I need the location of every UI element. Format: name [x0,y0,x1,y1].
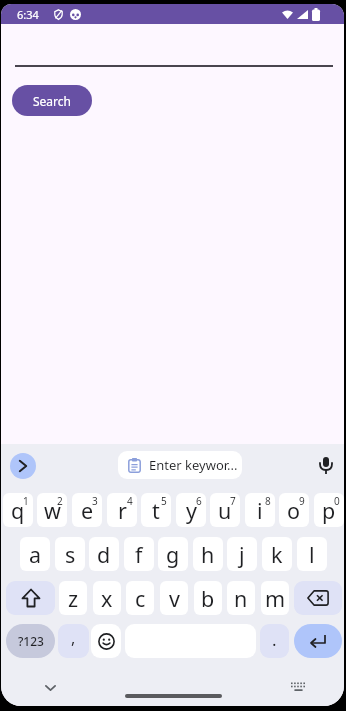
staticText: o [287,496,301,525]
button[interactable]: j [227,537,257,571]
button[interactable] [294,624,342,658]
staticText: r [118,496,127,525]
staticText: 5 [161,494,167,508]
staticText: 3 [92,494,98,508]
button[interactable]: x [93,581,121,615]
staticText: 6 [196,494,202,508]
button[interactable]: u [210,493,240,527]
staticText: 6:34 [17,7,39,22]
staticText: g [166,540,180,569]
button[interactable]: y [176,493,206,527]
staticText: l [309,540,315,569]
staticText: ?123 [18,633,44,649]
button[interactable]: l [297,537,327,571]
staticText: y [186,496,197,525]
button[interactable]: d [89,537,119,571]
button[interactable]: a [20,537,50,571]
staticText: d [97,540,111,569]
staticText: x [101,584,113,613]
button[interactable] [290,682,307,693]
staticText: z [68,584,79,613]
staticText: 1 [23,494,29,508]
button[interactable]: i [245,493,275,527]
staticText: 2 [57,494,63,508]
staticText: 8 [265,494,271,508]
staticText: k [271,540,283,569]
staticText: 7 [230,494,236,508]
staticText: 4 [127,494,133,508]
button[interactable]: c [126,581,154,615]
staticText: u [218,496,232,525]
staticText: n [234,584,248,613]
staticText: . [272,628,277,651]
staticText: h [201,540,215,569]
button[interactable]: h [193,537,223,571]
button[interactable]: r [107,493,137,527]
button[interactable]: s [55,537,85,571]
button[interactable]: m [261,581,289,615]
button[interactable]: n [227,581,255,615]
staticText: , [71,627,76,649]
button[interactable] [10,453,36,479]
button[interactable]: ?123 [6,624,55,658]
staticText: b [201,584,215,613]
staticText: q [11,496,25,525]
button[interactable]: t [141,493,171,527]
button[interactable]: . [260,624,289,658]
button[interactable] [6,581,55,615]
button[interactable]: o [279,493,309,527]
button[interactable] [125,694,222,698]
button[interactable]: v [160,581,188,615]
button[interactable]: w [37,493,67,527]
staticText: c [135,584,146,613]
staticText: j [239,540,245,569]
button[interactable]: f [124,537,154,571]
staticText: f [135,540,143,569]
staticText: v [169,584,180,613]
button[interactable] [294,581,342,615]
button[interactable] [91,624,121,658]
button[interactable]: Enter keywor... [118,451,242,479]
staticText: Search [33,93,71,109]
staticText: m [265,584,286,613]
button[interactable]: b [194,581,222,615]
staticText: t [152,496,160,525]
staticText: p [322,496,336,525]
button[interactable]: e [72,493,102,527]
button[interactable] [39,679,61,697]
button[interactable]: k [262,537,292,571]
staticText: a [29,540,42,569]
staticText: w [44,496,61,525]
staticText: Enter keywor... [149,456,238,474]
staticText: 9 [299,494,305,508]
button[interactable]: q [3,493,33,527]
button[interactable]: z [59,581,87,615]
staticText: s [65,540,76,569]
button[interactable]: g [158,537,188,571]
button[interactable]: Search [12,85,92,116]
button[interactable]: , [58,624,89,658]
staticText: 0 [334,494,340,508]
button[interactable] [318,457,334,475]
staticText: i [257,496,263,525]
staticText: e [81,496,94,525]
button[interactable]: p [314,493,344,527]
